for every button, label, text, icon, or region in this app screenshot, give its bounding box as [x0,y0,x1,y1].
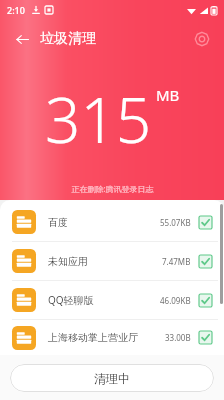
button[interactable]: QQ轻聊版 [0,281,224,319]
button[interactable]: 上海移动掌上营业厅 [0,320,224,355]
staticText: 正在删除:腾讯登录日志 [71,183,154,194]
staticText: 2:10 [7,4,25,16]
staticText: MB [156,85,180,105]
button[interactable]: Selected [199,294,212,307]
button[interactable]: Selected [199,216,212,229]
button[interactable]: Selected [199,331,212,344]
button[interactable]: Back [8,25,36,53]
staticText: 46.09KB [160,295,191,306]
staticText: 315 [45,77,152,161]
button[interactable]: 未知应用 [0,242,224,280]
staticText: 垃圾清理 [40,30,96,48]
button[interactable]: 清理中 [10,364,214,392]
staticText: 上海移动掌上营业厅 [48,331,138,344]
staticText: 未知应用 [48,255,88,268]
staticText: 55.07KB [160,217,191,228]
button[interactable]: 百度 [0,203,224,241]
button[interactable]: Settings [188,25,216,53]
staticText: 7.47MB [162,256,191,267]
staticText: 百度 [48,216,68,229]
staticText: 33.00B [165,332,191,343]
button[interactable]: Selected [199,255,212,268]
staticText: QQ轻聊版 [48,293,94,307]
staticText: 清理中 [94,371,130,386]
